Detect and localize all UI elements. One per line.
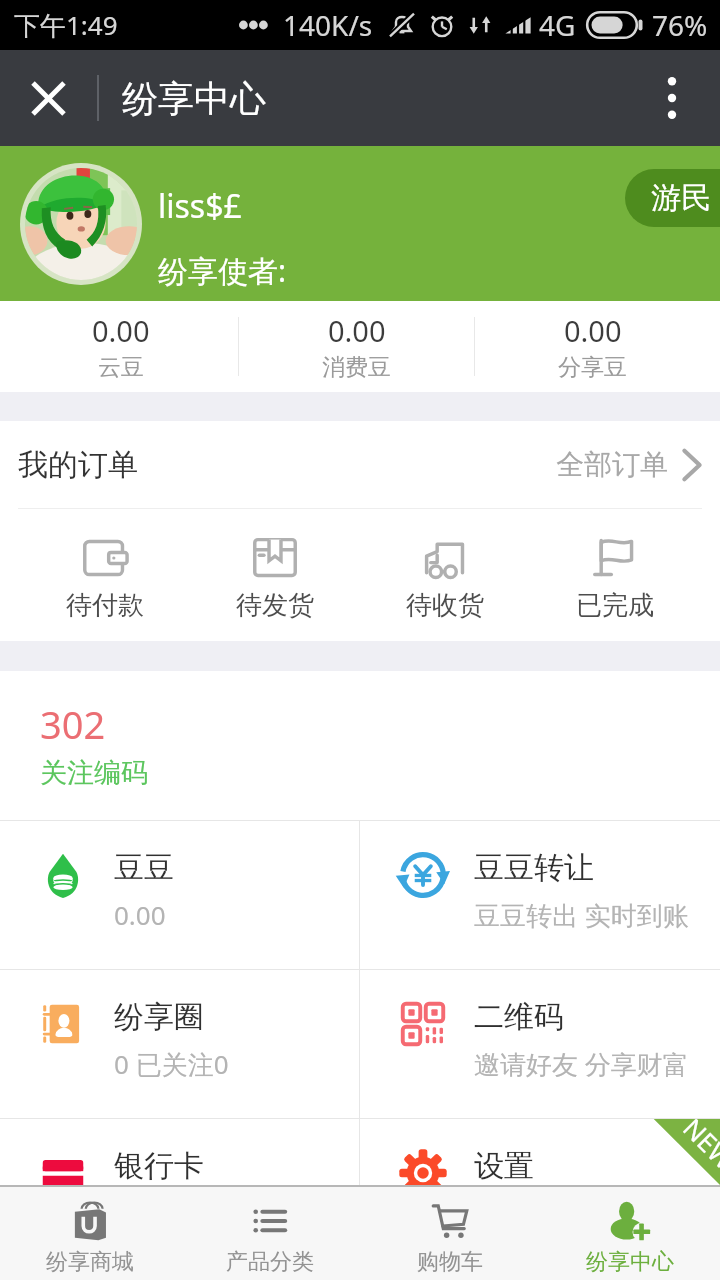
button[interactable]: Close: [0, 50, 96, 146]
staticText: 0.00: [328, 311, 386, 350]
button[interactable]: Avatar: [20, 163, 142, 285]
button[interactable]: 302: [0, 671, 720, 820]
button[interactable]: 已完成: [530, 509, 700, 641]
button[interactable]: 0.00: [475, 301, 710, 392]
staticText: 待付款: [66, 589, 144, 622]
staticText: 豆豆: [114, 849, 174, 887]
staticText: 待发货: [236, 589, 314, 622]
staticText: 下午1:49: [14, 7, 118, 43]
staticText: 银行卡: [114, 1147, 204, 1185]
button[interactable]: 待付款: [20, 509, 190, 641]
staticText: 购物车: [417, 1248, 483, 1276]
staticText: 我的订单: [18, 446, 138, 484]
staticText: 纷享中心: [122, 76, 266, 121]
button[interactable]: 纷享商城: [0, 1187, 180, 1280]
staticText: 邀请好友 分享财富: [474, 1046, 689, 1082]
button[interactable]: 购物车: [360, 1187, 540, 1280]
staticText: 0.00: [114, 897, 166, 932]
staticText: 0 已关注0: [114, 1046, 229, 1082]
staticText: 纷享使者:: [158, 250, 287, 291]
button[interactable]: 游民: [625, 169, 720, 227]
button[interactable]: 待收货: [360, 509, 530, 641]
button[interactable]: 银行卡: [0, 1119, 359, 1185]
staticText: 游民: [651, 179, 711, 217]
button[interactable]: 二维码: [360, 970, 720, 1118]
staticText: 豆豆转让: [474, 849, 594, 887]
button[interactable]: 纷享中心: [540, 1187, 720, 1280]
button[interactable]: 产品分类: [180, 1187, 360, 1280]
staticText: liss$£: [158, 184, 242, 228]
button[interactable]: 我的订单: [0, 421, 720, 508]
staticText: 纷享圈: [114, 998, 204, 1036]
staticText: 二维码: [474, 998, 564, 1036]
staticText: 302: [40, 698, 106, 750]
button[interactable]: 纷享圈: [0, 970, 359, 1118]
staticText: 消费豆: [322, 353, 391, 382]
staticText: 0.00: [564, 311, 622, 350]
button[interactable]: 设置: [360, 1119, 720, 1185]
staticText: 140K/s: [283, 6, 373, 44]
button[interactable]: 0.00: [239, 301, 474, 392]
staticText: 0.00: [92, 311, 150, 350]
staticText: 分享豆: [558, 353, 627, 382]
button[interactable]: 0.00: [3, 301, 238, 392]
staticText: 产品分类: [226, 1248, 314, 1276]
staticText: 4G: [539, 6, 576, 44]
staticText: 纷享中心: [586, 1248, 674, 1276]
staticText: 云豆: [98, 353, 144, 382]
staticText: 豆豆转出 实时到账: [474, 897, 689, 933]
staticText: 全部订单: [556, 447, 668, 482]
button[interactable]: 待发货: [190, 509, 360, 641]
staticText: 待收货: [406, 589, 484, 622]
button[interactable]: 豆豆: [0, 821, 359, 969]
staticText: 设置: [474, 1147, 534, 1185]
button[interactable]: 豆豆转让: [360, 821, 720, 969]
staticText: 纷享商城: [46, 1248, 134, 1276]
staticText: NEW: [676, 1119, 720, 1177]
staticText: 已完成: [576, 589, 654, 622]
staticText: 76%: [652, 6, 708, 44]
staticText: 关注编码: [40, 756, 148, 790]
button[interactable]: More options: [624, 50, 720, 146]
